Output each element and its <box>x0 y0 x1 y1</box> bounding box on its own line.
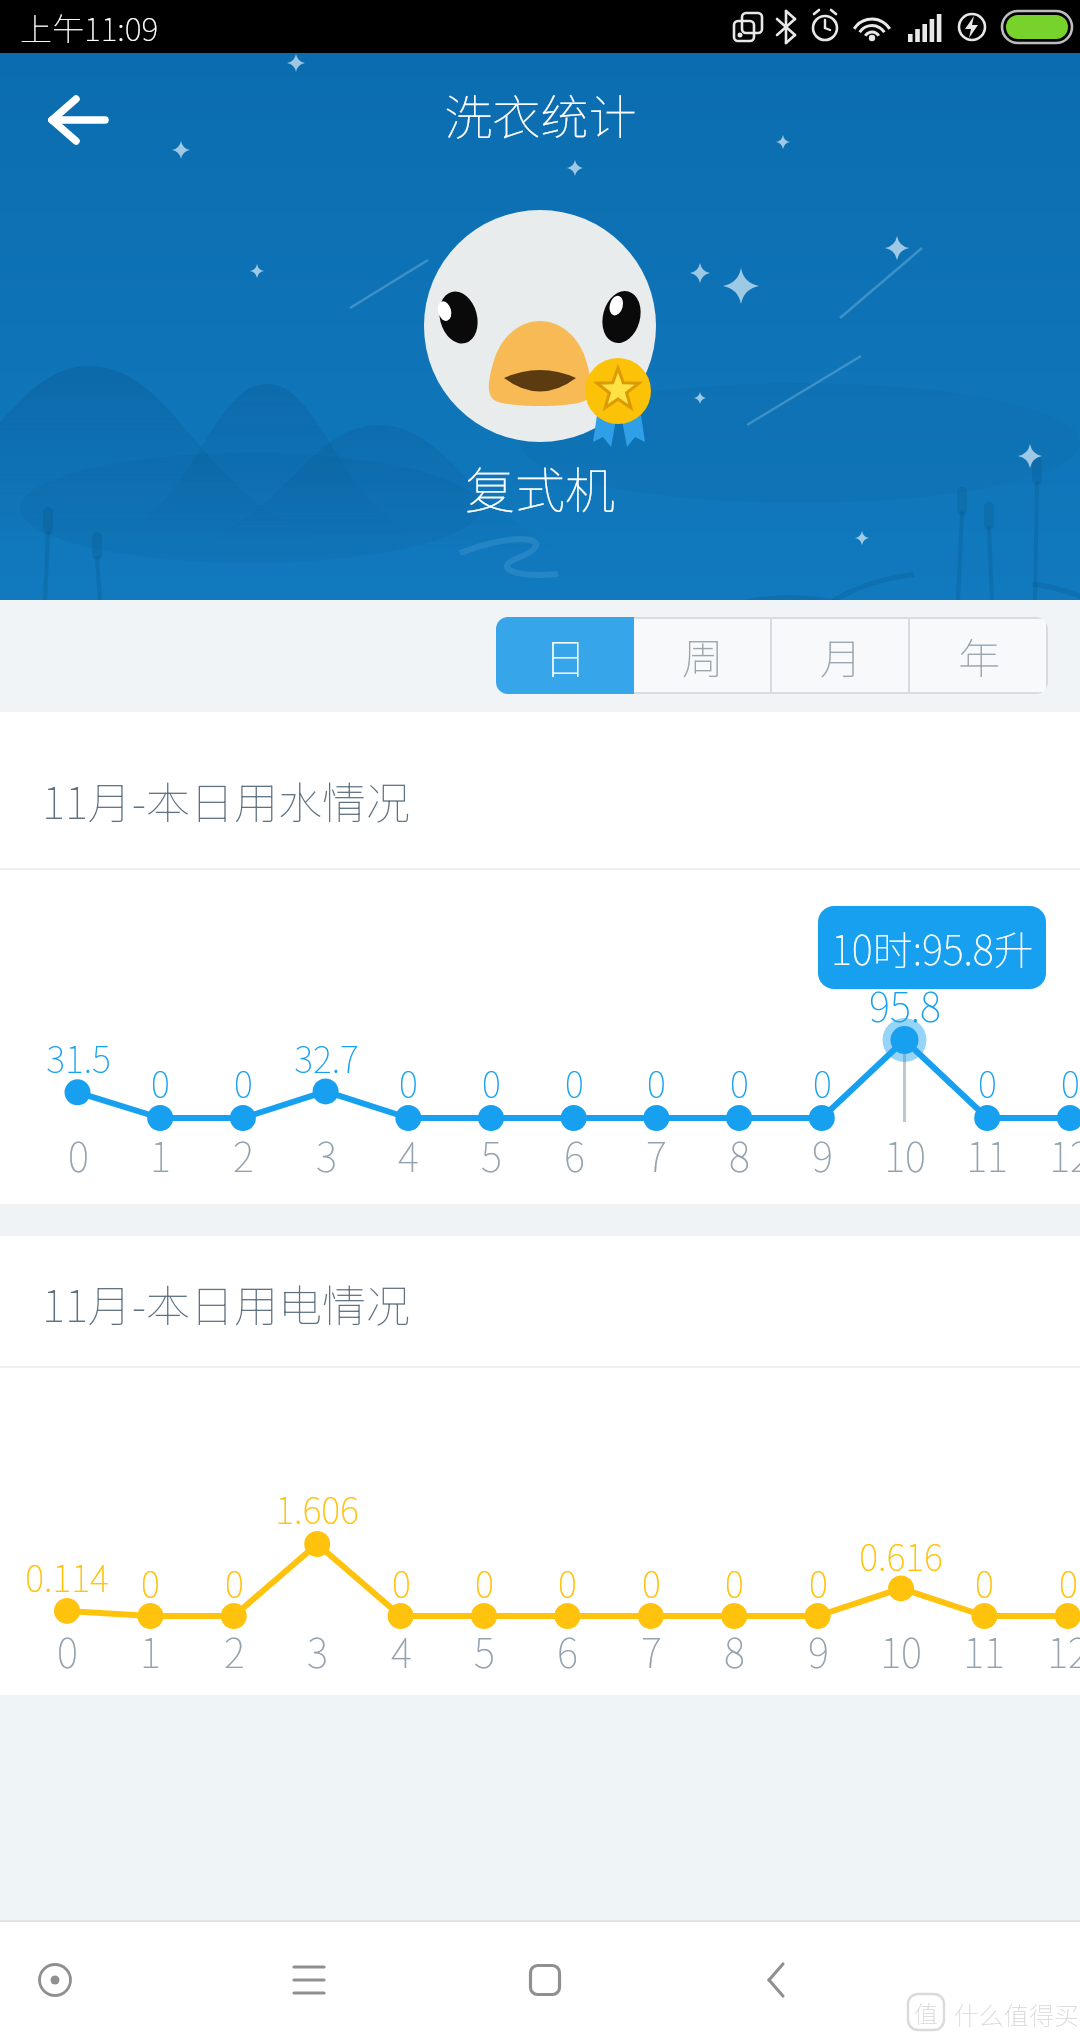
staticText: 0 <box>1061 1056 1080 1108</box>
staticText: 10 <box>884 1126 926 1184</box>
staticText: 0 <box>978 1056 997 1108</box>
staticText: 12 <box>1047 1622 1080 1680</box>
button[interactable]: 10时:95.8升 <box>818 906 1046 989</box>
staticText: 11月-本日用水情况 <box>42 768 411 832</box>
staticText: 1.606 <box>275 1482 359 1534</box>
staticText: 0.114 <box>25 1550 109 1602</box>
staticText: 0 <box>399 1056 418 1108</box>
button[interactable]: 年 <box>910 617 1048 694</box>
button[interactable] <box>15 1940 95 2020</box>
staticText: 周 <box>682 625 725 686</box>
staticText: 0 <box>809 1556 828 1608</box>
staticText: 0 <box>68 1126 89 1184</box>
staticText: 0 <box>647 1056 666 1108</box>
staticText: 0 <box>475 1556 494 1608</box>
button[interactable] <box>269 1940 349 2020</box>
staticText: 11 <box>963 1622 1005 1680</box>
staticText: 0 <box>57 1622 78 1680</box>
staticText: 7 <box>646 1126 667 1184</box>
staticText: 12 <box>1049 1126 1080 1184</box>
staticText: 8 <box>724 1622 745 1680</box>
staticText: 0 <box>392 1556 411 1608</box>
staticText: 9 <box>808 1622 829 1680</box>
button[interactable] <box>743 1940 823 2020</box>
staticText: 5 <box>474 1622 495 1680</box>
button[interactable] <box>420 206 660 446</box>
staticText: 0 <box>642 1556 661 1608</box>
staticText: 什么值得买 <box>954 1996 1080 2030</box>
staticText: 9 <box>812 1126 833 1184</box>
staticText: 1 <box>140 1622 161 1680</box>
staticText: 0 <box>482 1056 501 1108</box>
staticText: 5 <box>481 1126 502 1184</box>
staticText: 0 <box>225 1556 244 1608</box>
staticText: 0 <box>725 1556 744 1608</box>
staticText: 0 <box>730 1056 749 1108</box>
staticText: 上午11:09 <box>20 4 159 50</box>
button[interactable] <box>30 93 130 153</box>
staticText: 4 <box>391 1622 412 1680</box>
staticText: 0 <box>234 1056 253 1108</box>
staticText: 0 <box>813 1056 832 1108</box>
staticText: 95.8 <box>869 976 941 1034</box>
staticText: 年 <box>958 625 1001 686</box>
staticText: 0 <box>975 1556 994 1608</box>
button[interactable]: 日 <box>496 617 634 694</box>
staticText: 32.7 <box>294 1031 359 1083</box>
staticText: 0 <box>151 1056 170 1108</box>
staticText: 值 <box>914 1995 938 2030</box>
staticText: 31.5 <box>46 1031 111 1083</box>
button[interactable] <box>505 1940 585 2020</box>
staticText: 2 <box>233 1126 254 1184</box>
staticText: 月 <box>820 625 863 686</box>
staticText: 0 <box>141 1556 160 1608</box>
staticText: 0 <box>565 1056 584 1108</box>
staticText: 2 <box>224 1622 245 1680</box>
staticText: 洗衣统计 <box>444 79 637 149</box>
staticText: 6 <box>557 1622 578 1680</box>
staticText: 0 <box>558 1556 577 1608</box>
staticText: 0.616 <box>859 1529 943 1581</box>
staticText: 4 <box>398 1126 419 1184</box>
button[interactable]: 月 <box>772 617 910 694</box>
staticText: 3 <box>316 1126 337 1184</box>
button[interactable]: 周 <box>634 617 772 694</box>
staticText: 日 <box>544 625 587 686</box>
staticText: 6 <box>564 1126 585 1184</box>
staticText: 10 <box>880 1622 922 1680</box>
staticText: 11月-本日用电情况 <box>42 1271 411 1335</box>
staticText: 1 <box>150 1126 171 1184</box>
staticText: 11 <box>966 1126 1008 1184</box>
staticText: 复式机 <box>465 451 615 523</box>
staticText: 8 <box>729 1126 750 1184</box>
staticText: 3 <box>307 1622 328 1680</box>
staticText: 7 <box>641 1622 662 1680</box>
staticText: 10时:95.8升 <box>831 919 1034 977</box>
staticText: 0 <box>1059 1556 1078 1608</box>
